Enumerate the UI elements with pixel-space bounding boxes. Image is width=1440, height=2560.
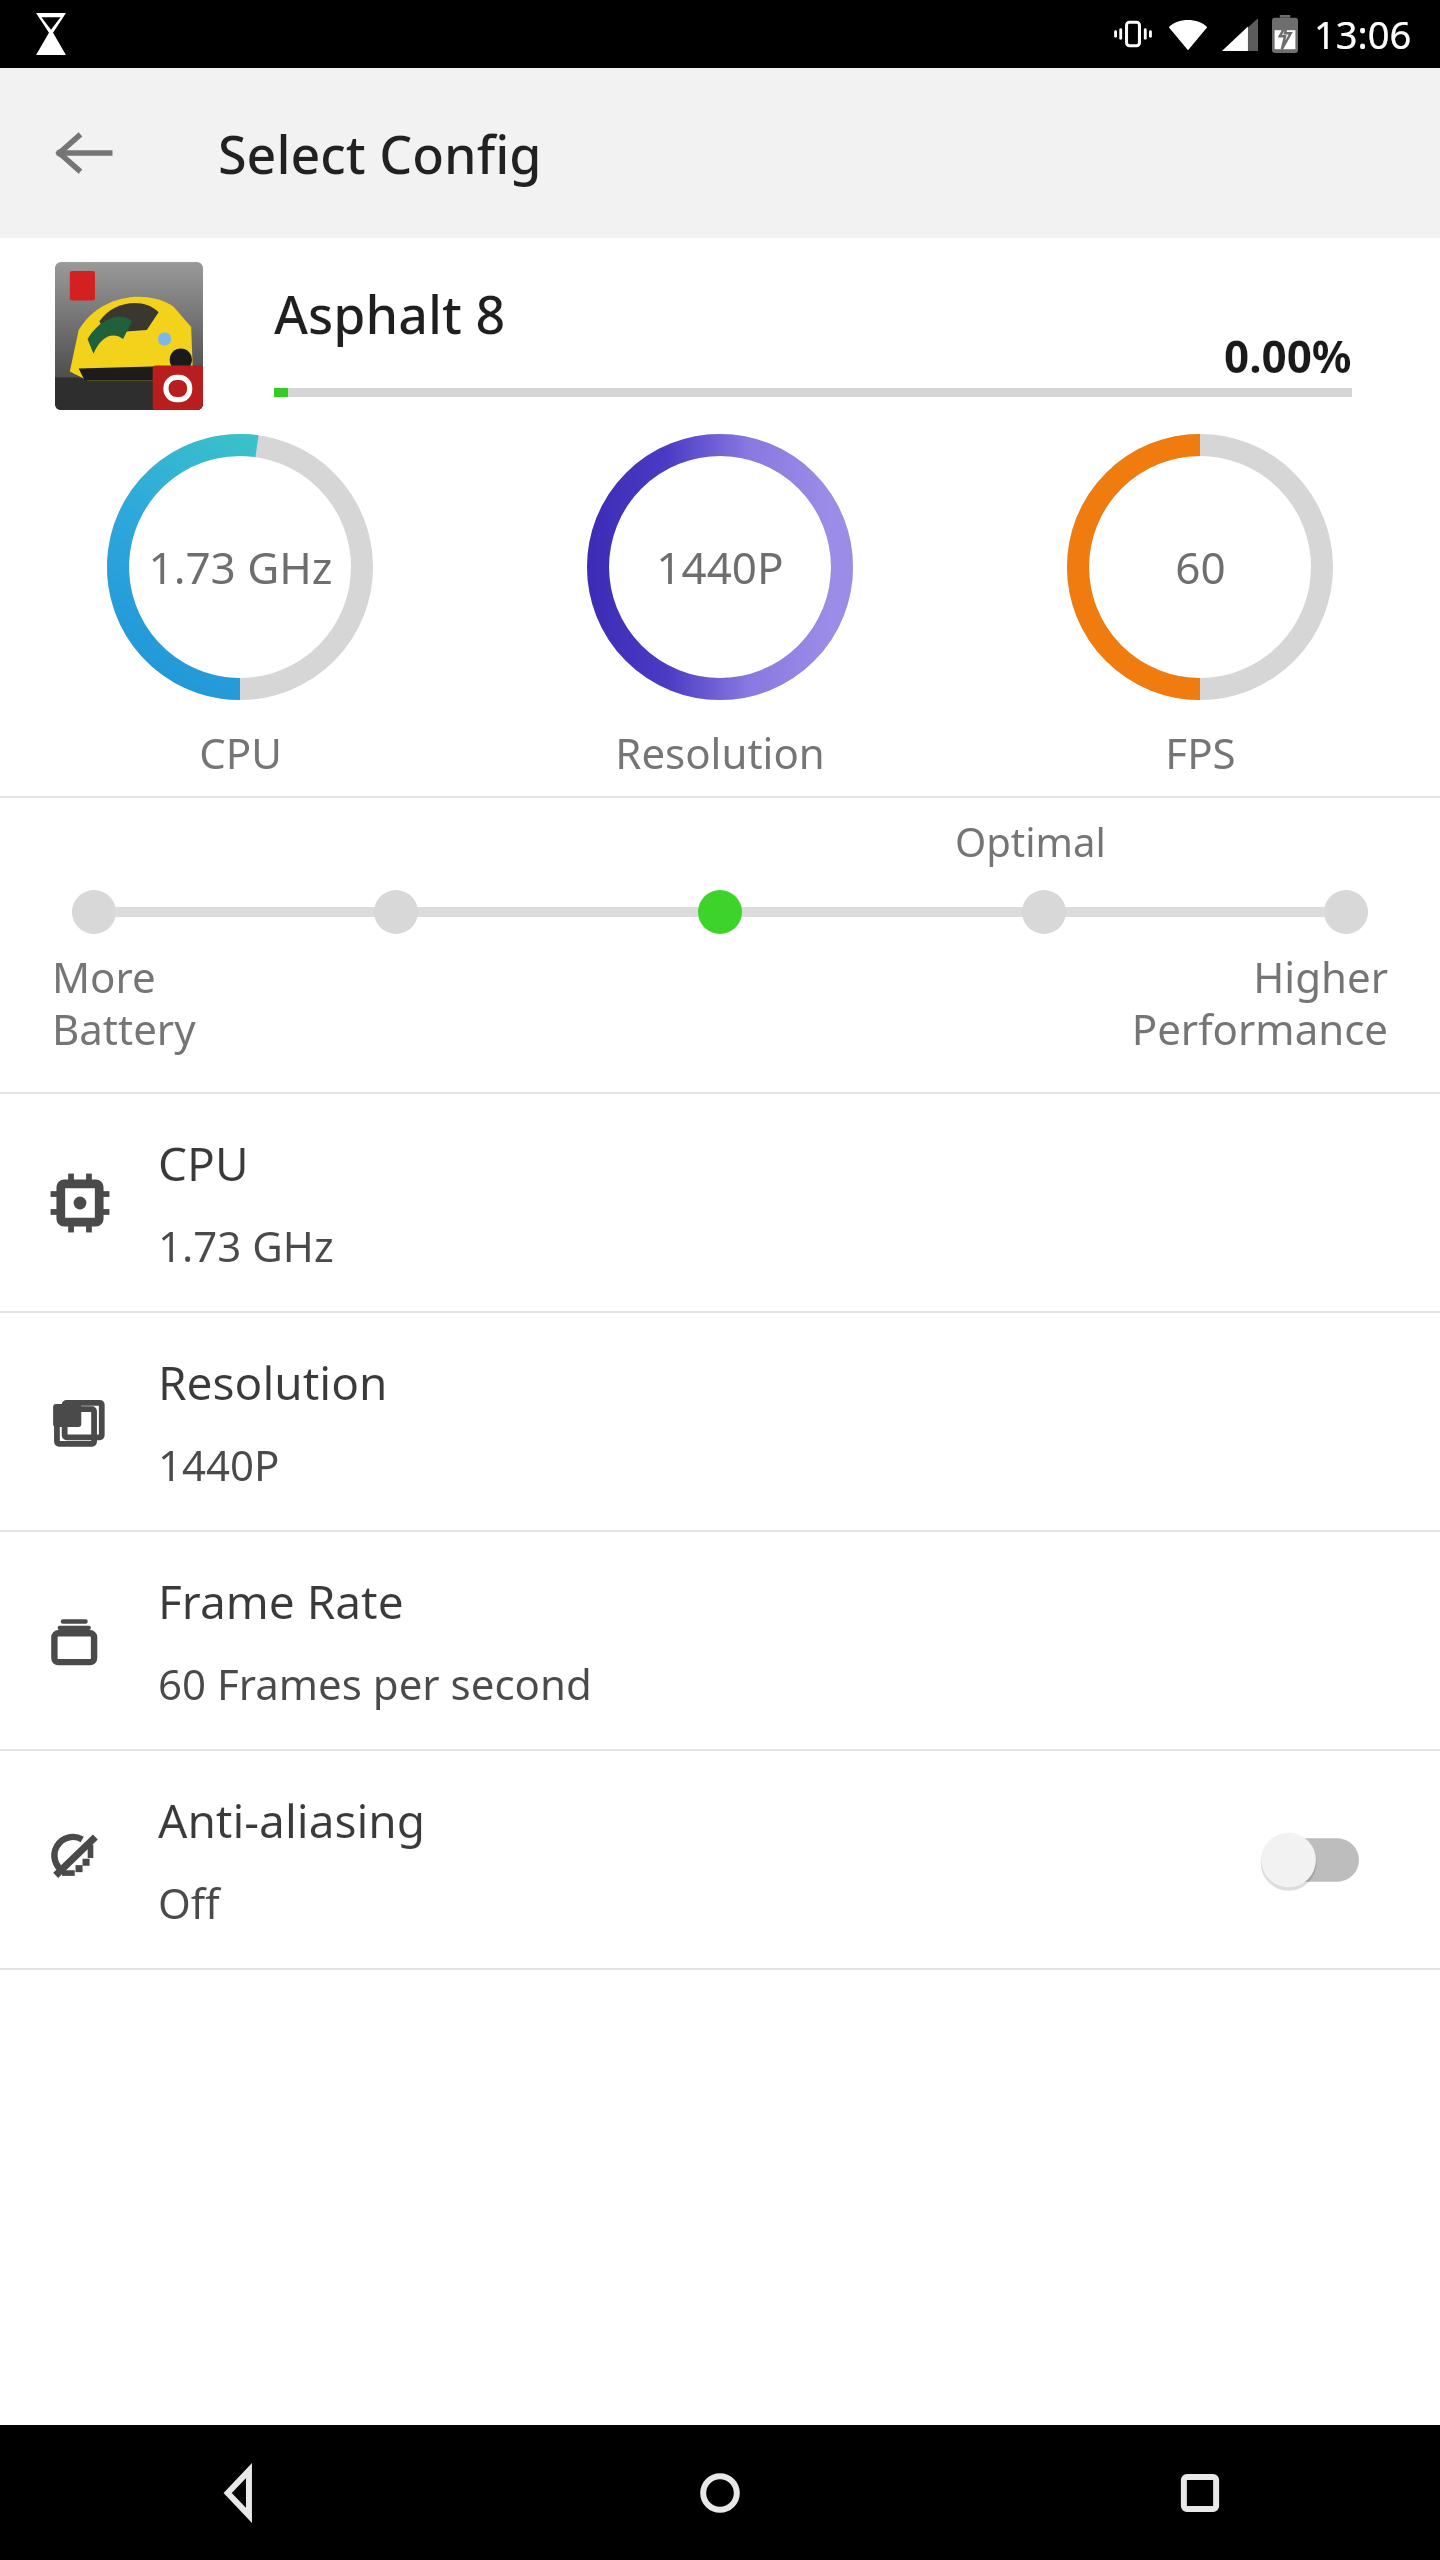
button[interactable]: Back — [0, 2425, 480, 2560]
staticText: 60 Frames per second — [158, 1655, 592, 1712]
staticText: 1.73 GHz — [158, 1217, 334, 1274]
button[interactable]: Toggle Anti-aliasing — [1260, 1825, 1370, 1895]
button[interactable]: Frame Rate — [0, 1532, 1440, 1749]
button[interactable]: Performance level 2 — [383, 890, 437, 934]
staticText: Higher Performance — [1131, 948, 1388, 1057]
button[interactable]: Performance level 3 — [693, 890, 747, 934]
staticText: 1440P — [158, 1436, 280, 1493]
staticText: Frame Rate — [158, 1570, 404, 1633]
button[interactable]: Performance level 4 — [1004, 890, 1058, 934]
button[interactable]: Resolution — [0, 1313, 1440, 1530]
staticText: CPU — [158, 1132, 249, 1195]
staticText: 0.00% — [1224, 326, 1352, 386]
staticText: 1.73 GHz — [148, 537, 333, 597]
button[interactable]: 1440P — [480, 418, 960, 778]
staticText: More Battery — [52, 948, 196, 1057]
staticText: Select Config — [218, 118, 542, 189]
button[interactable]: CPU — [0, 1094, 1440, 1311]
button[interactable]: Home — [480, 2425, 960, 2560]
staticText: 1440P — [656, 537, 784, 597]
staticText: 13:06 — [1314, 8, 1412, 60]
staticText: Anti-aliasing — [158, 1789, 426, 1852]
button[interactable]: Performance level 1 — [72, 890, 126, 934]
staticText: CPU — [199, 724, 282, 778]
staticText: FPS — [1165, 724, 1236, 778]
staticText: Asphalt 8 — [274, 278, 506, 349]
staticText: Resolution — [158, 1351, 388, 1414]
staticText: Resolution — [615, 724, 825, 778]
staticText: 60 — [1175, 537, 1226, 597]
button[interactable]: 60 — [960, 418, 1440, 778]
staticText: Off — [158, 1874, 220, 1931]
button[interactable]: Anti-aliasing — [0, 1751, 1440, 1968]
button[interactable]: Back — [36, 105, 132, 201]
button[interactable]: 1.73 GHz — [0, 418, 480, 778]
button[interactable]: Performance level 5 — [1314, 890, 1368, 934]
staticText: Optimal — [955, 814, 1106, 868]
button[interactable]: Recent apps — [960, 2425, 1440, 2560]
